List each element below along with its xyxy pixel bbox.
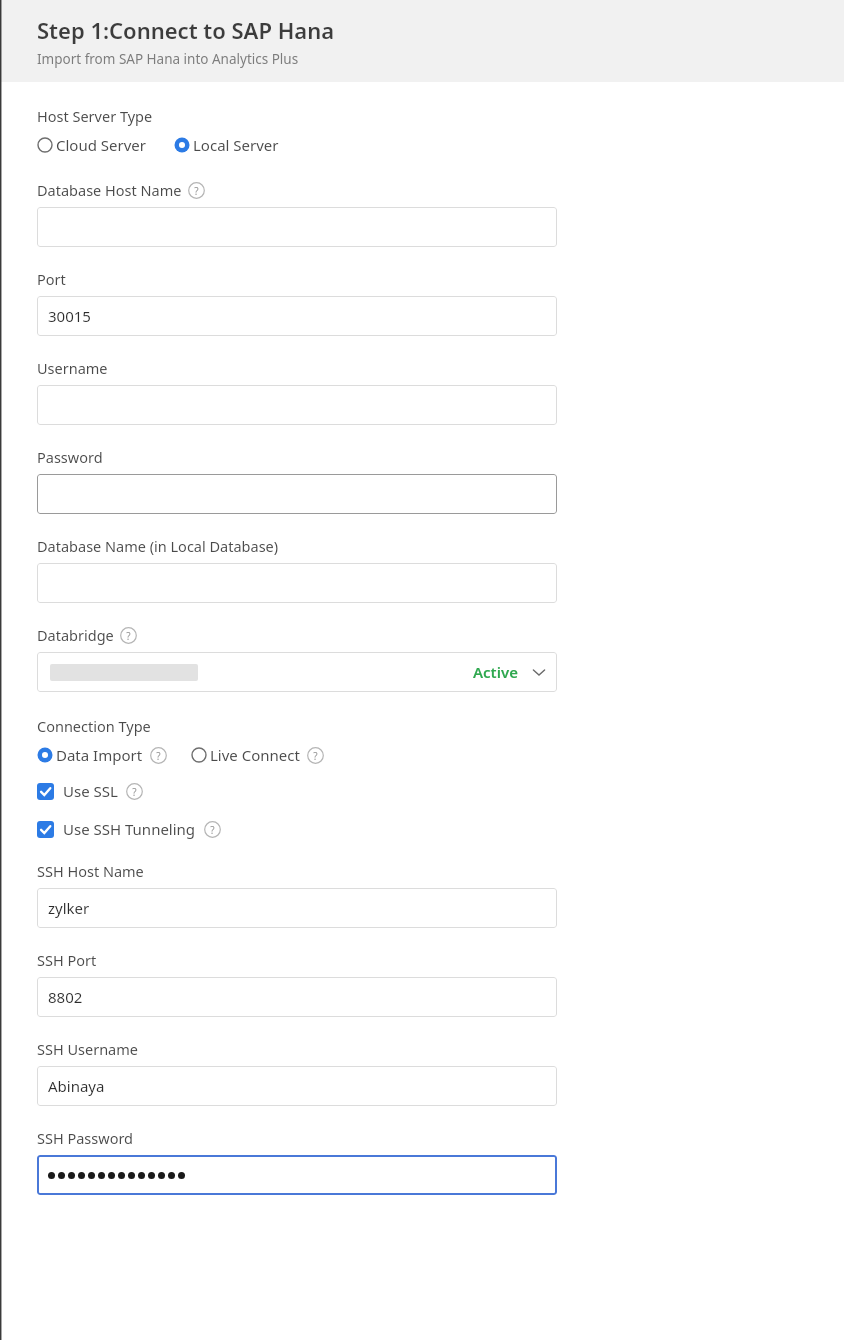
other: Expand databridge (532, 665, 546, 679)
staticText: Port (37, 269, 66, 289)
staticText: Connection Type (37, 716, 151, 736)
staticText: Password (37, 447, 103, 467)
staticText: SSH Host Name (37, 861, 144, 881)
staticText: ? (313, 749, 318, 763)
button[interactable] (37, 385, 557, 425)
button[interactable]: Local Server (174, 135, 279, 155)
staticText: Database Host Name (37, 180, 182, 200)
button[interactable]: Use SSL (37, 781, 143, 801)
button[interactable]: Use SSH Tunneling (37, 819, 221, 839)
staticText: ? (126, 629, 131, 643)
staticText: Active (473, 662, 518, 682)
button[interactable]: Active (37, 652, 557, 692)
staticText: SSH Username (37, 1039, 138, 1059)
button[interactable]: 8802 (37, 977, 557, 1017)
staticText: Use SSL (63, 781, 118, 801)
staticText: Import from SAP Hana into Analytics Plus (37, 50, 299, 68)
button[interactable]: Abinaya (37, 1066, 557, 1106)
staticText: Step 1:Connect to SAP Hana (37, 15, 335, 45)
staticText: ? (156, 749, 161, 763)
button[interactable]: zylker (37, 888, 557, 928)
staticText: Live Connect (210, 745, 300, 765)
staticText: Database Name (in Local Database) (37, 536, 279, 556)
button[interactable] (37, 474, 557, 514)
staticText: Host Server Type (37, 106, 153, 126)
staticText: Username (37, 358, 108, 378)
staticText: Databridge (37, 625, 114, 645)
staticText: ? (132, 785, 137, 799)
staticText: ? (210, 823, 215, 837)
staticText: Use SSH Tunneling (63, 819, 196, 839)
button[interactable]: Live Connect (191, 745, 324, 765)
staticText: SSH Password (37, 1128, 134, 1148)
button[interactable] (37, 1155, 557, 1195)
staticText: Abinaya (48, 1076, 105, 1096)
staticText: SSH Port (37, 950, 97, 970)
button[interactable] (37, 207, 557, 247)
staticText: 8802 (48, 987, 83, 1007)
button[interactable]: 30015 (37, 296, 557, 336)
staticText: 30015 (48, 306, 91, 326)
staticText: Cloud Server (56, 135, 146, 155)
button[interactable] (37, 563, 557, 603)
staticText: ? (194, 184, 199, 198)
button[interactable]: Cloud Server (37, 135, 146, 155)
staticText: Data Import (56, 745, 143, 765)
staticText: zylker (48, 898, 90, 918)
button[interactable]: Data Import (37, 745, 167, 765)
staticText: Local Server (193, 135, 279, 155)
